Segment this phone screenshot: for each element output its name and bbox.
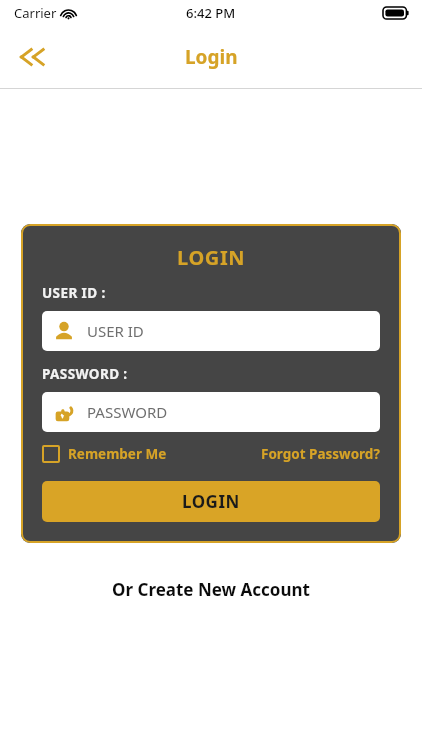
- staticText: LOGIN: [177, 244, 246, 271]
- staticText: Remember Me: [68, 445, 167, 463]
- staticText: Forgot Password?: [261, 445, 380, 463]
- button[interactable]: LOGIN: [42, 481, 380, 522]
- staticText: Carrier: [14, 4, 57, 22]
- button[interactable]: Back: [8, 33, 56, 81]
- staticText: PASSWORD: [87, 402, 168, 422]
- staticText: LOGIN: [182, 490, 240, 513]
- button[interactable]: Forgot Password?: [261, 445, 380, 463]
- staticText: Login: [185, 44, 238, 70]
- button[interactable]: Or Create New Account: [0, 578, 422, 601]
- staticText: USER ID: [87, 321, 144, 341]
- button[interactable]: Remember Me: [42, 445, 167, 463]
- button[interactable]: USER ID: [42, 311, 380, 351]
- staticText: 6:42 PM: [186, 4, 236, 22]
- staticText: PASSWORD :: [42, 365, 128, 383]
- staticText: USER ID :: [42, 284, 106, 302]
- staticText: Or Create New Account: [112, 578, 310, 601]
- button[interactable]: PASSWORD: [42, 392, 380, 432]
